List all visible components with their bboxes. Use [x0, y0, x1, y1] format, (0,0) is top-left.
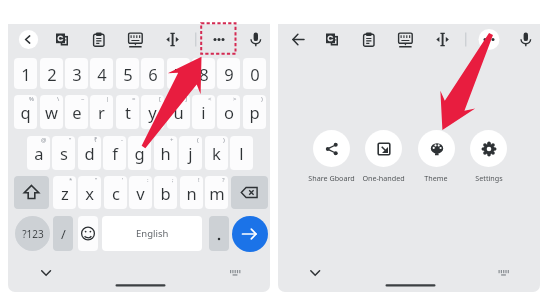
button[interactable]: 7	[167, 58, 190, 89]
staticText: f	[112, 142, 118, 164]
button[interactable]	[209, 216, 229, 251]
staticText: 3	[72, 63, 82, 85]
staticText: 5	[123, 63, 133, 85]
staticText: ?123	[22, 227, 44, 241]
staticText: h	[160, 142, 171, 164]
staticText: v	[136, 182, 145, 204]
button[interactable]: ~	[65, 95, 88, 129]
button[interactable]: 0	[243, 58, 266, 89]
staticText: ]	[185, 95, 187, 103]
staticText: j	[188, 142, 193, 164]
staticText: u	[173, 101, 184, 123]
button[interactable]: Back	[286, 27, 312, 53]
staticText: English	[136, 227, 169, 240]
staticText: r	[98, 101, 105, 123]
button[interactable]: Google search	[49, 27, 75, 53]
button[interactable]: Shift	[14, 176, 49, 209]
staticText: g	[134, 142, 145, 164]
button[interactable]: One-handed	[365, 130, 402, 167]
button[interactable]: Text editing	[160, 27, 186, 53]
button[interactable]: +	[154, 136, 177, 170]
button[interactable]: 4	[90, 58, 113, 89]
button[interactable]: Voice input	[243, 27, 269, 53]
button[interactable]: Settings	[470, 130, 507, 167]
button[interactable]: =	[116, 95, 139, 129]
button[interactable]: 5	[116, 58, 139, 89]
button[interactable]: 3	[65, 58, 88, 89]
button[interactable]: Clipboard	[86, 27, 112, 53]
button[interactable]: %	[14, 95, 37, 129]
button[interactable]: Switch keyboard	[222, 260, 248, 286]
button[interactable]: More options	[206, 27, 232, 53]
button[interactable]: ]	[167, 95, 190, 129]
button[interactable]: !	[180, 176, 203, 209]
button[interactable]: "	[78, 176, 101, 209]
staticText: "	[69, 136, 72, 144]
button[interactable]: \	[40, 95, 63, 129]
staticText: Theme	[424, 173, 448, 183]
button[interactable]: Stickers	[392, 27, 418, 53]
button[interactable]: ;	[154, 176, 177, 209]
button[interactable]: Switch keyboard	[491, 260, 517, 286]
button[interactable]: Voice input	[513, 27, 539, 53]
button[interactable]: '	[104, 176, 127, 209]
button[interactable]: :	[129, 176, 152, 209]
button[interactable]: Share Gboard	[313, 130, 350, 167]
button[interactable]: 8	[192, 58, 215, 89]
staticText: +	[170, 136, 174, 144]
button[interactable]: English	[102, 216, 202, 251]
staticText: ;	[172, 176, 174, 184]
button[interactable]: _	[128, 136, 151, 170]
button[interactable]: Clipboard	[356, 27, 382, 53]
staticText: 8	[199, 63, 209, 85]
button[interactable]: /	[53, 216, 73, 251]
staticText: Settings	[475, 173, 503, 183]
button[interactable]: |	[90, 95, 113, 129]
staticText: 9	[224, 63, 234, 85]
button[interactable]: Backspace	[231, 176, 268, 209]
button[interactable]: >	[217, 95, 240, 129]
button[interactable]: 2	[40, 58, 63, 89]
button[interactable]: Google search	[319, 27, 345, 53]
staticText: y	[148, 101, 157, 123]
staticText: ₹	[94, 136, 98, 144]
button[interactable]: 6	[141, 58, 164, 89]
staticText: )	[223, 136, 225, 144]
button[interactable]: 1	[14, 58, 37, 89]
button[interactable]: Enter	[232, 216, 268, 252]
button[interactable]: Emoji	[78, 216, 98, 251]
button[interactable]: l	[230, 136, 253, 170]
button[interactable]: )	[205, 136, 228, 170]
button[interactable]: 9	[217, 58, 240, 89]
button[interactable]: Back	[16, 27, 42, 53]
button[interactable]: Theme	[418, 130, 455, 167]
staticText: a	[34, 142, 44, 164]
button[interactable]: More options	[476, 27, 502, 53]
staticText: s	[60, 142, 68, 164]
button[interactable]: @	[27, 136, 50, 170]
staticText: |	[106, 95, 110, 103]
staticText: 6	[148, 63, 158, 85]
button[interactable]: ?	[205, 176, 228, 209]
button[interactable]: -	[103, 136, 126, 170]
button[interactable]: <	[192, 95, 215, 129]
staticText: l	[239, 142, 244, 164]
button[interactable]: ₹	[78, 136, 101, 170]
staticText: <	[208, 95, 212, 103]
button[interactable]: ?123	[15, 216, 50, 251]
staticText: Share Gboard	[308, 173, 355, 183]
button[interactable]: Stickers	[122, 27, 148, 53]
button[interactable]: Hide keyboard	[302, 260, 328, 286]
staticText: p	[249, 101, 260, 123]
staticText: -	[121, 136, 123, 144]
staticText: One-handed	[362, 173, 405, 183]
button[interactable]: Text editing	[430, 27, 456, 53]
staticText: t	[125, 101, 131, 123]
button[interactable]: "	[52, 136, 75, 170]
button[interactable]: [	[141, 95, 164, 129]
staticText: >	[233, 95, 237, 103]
button[interactable]: )	[243, 95, 266, 129]
button[interactable]: *	[53, 176, 76, 209]
button[interactable]: Hide keyboard	[33, 260, 59, 286]
button[interactable]: (	[179, 136, 202, 170]
